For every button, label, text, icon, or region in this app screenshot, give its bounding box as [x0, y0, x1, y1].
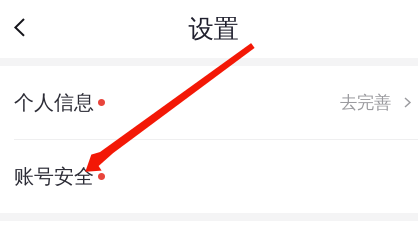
- button[interactable]: 个人信息: [0, 66, 418, 139]
- staticText: 设置: [188, 13, 238, 44]
- staticText: 账号安全: [14, 164, 94, 189]
- staticText: 去完善: [340, 92, 391, 113]
- button[interactable]: Back: [0, 1, 39, 57]
- staticText: 个人信息: [14, 90, 94, 115]
- button[interactable]: 账号安全: [0, 140, 418, 213]
